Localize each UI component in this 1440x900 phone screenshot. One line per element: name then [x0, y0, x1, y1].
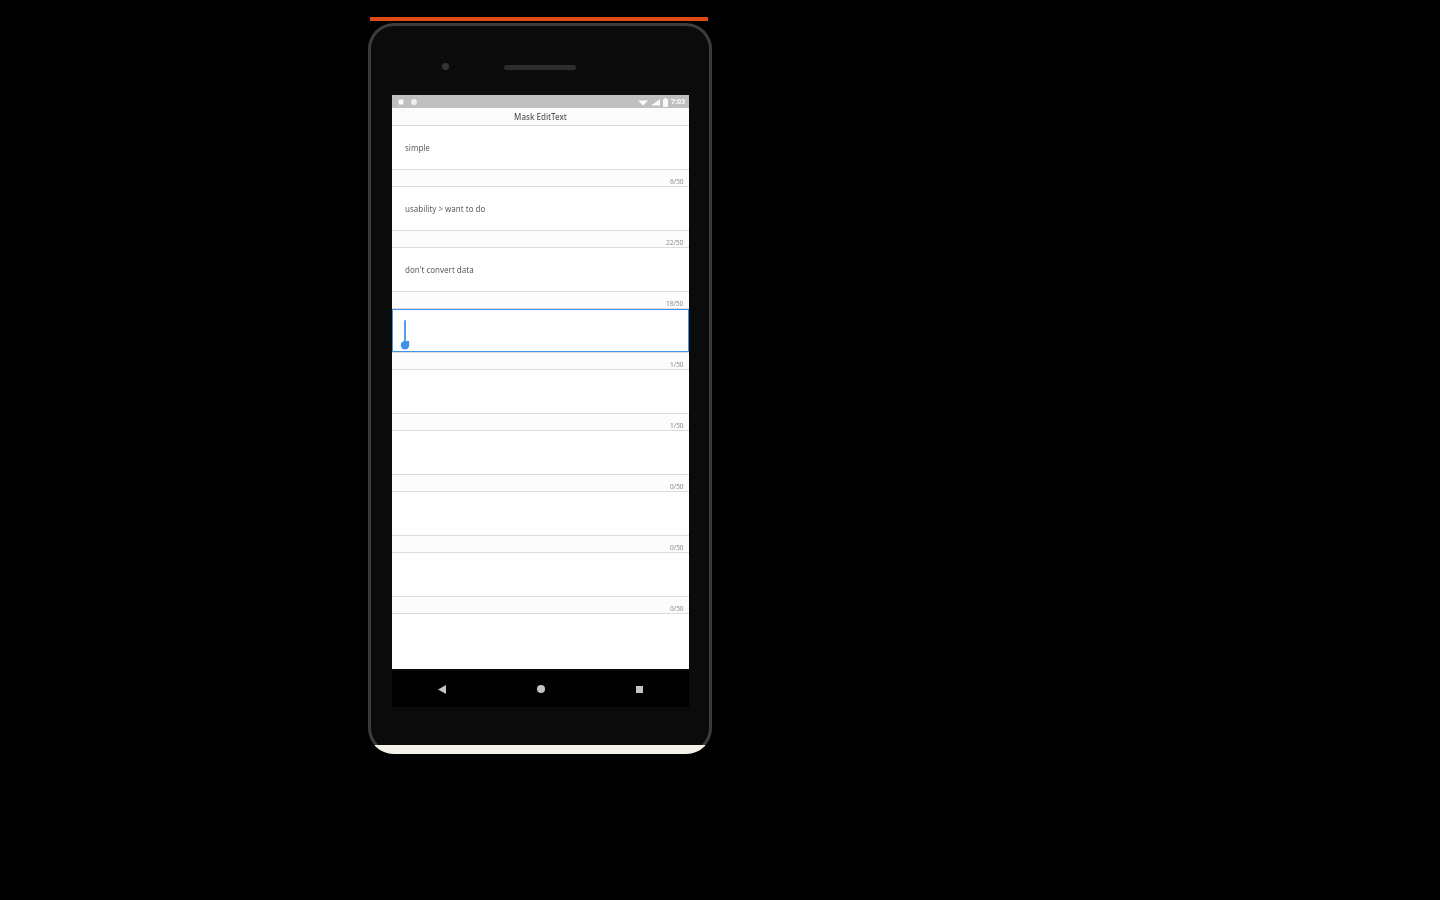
button[interactable]: Recent apps	[590, 671, 689, 707]
staticText: simple	[405, 142, 430, 153]
staticText: 1/50	[670, 360, 684, 369]
button[interactable]: don't convert data	[392, 248, 689, 291]
button[interactable]: simple	[392, 126, 689, 169]
staticText: 18/50	[666, 299, 684, 308]
staticText: 0/50	[670, 543, 684, 552]
staticText: Mask EditText	[514, 111, 567, 122]
button[interactable]: usability > want to do	[392, 187, 689, 230]
staticText: usability > want to do	[405, 203, 486, 214]
staticText: 22/50	[666, 238, 684, 247]
staticText: 1/50	[670, 421, 684, 430]
staticText: 0/50	[670, 604, 684, 613]
button[interactable]: Home	[491, 671, 590, 707]
staticText: don't convert data	[405, 264, 474, 275]
staticText: 7:03	[671, 97, 685, 107]
button[interactable]: Back	[392, 671, 491, 707]
button[interactable]	[392, 309, 689, 352]
staticText: 6/50	[670, 177, 684, 186]
staticText: 0/50	[670, 482, 684, 491]
